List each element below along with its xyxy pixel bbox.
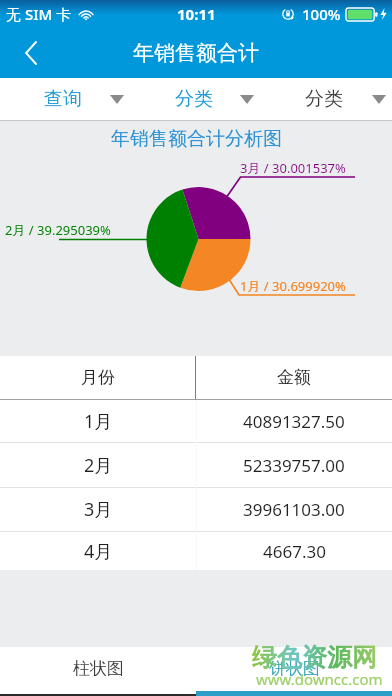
button[interactable]: 分类 — [130, 78, 261, 120]
staticText: 2月 — [84, 453, 113, 478]
staticText: 无 SIM 卡 — [6, 4, 72, 24]
button[interactable]: 查询 — [0, 78, 130, 120]
staticText: 3月 — [84, 497, 113, 522]
staticText: 52339757.00 — [243, 454, 345, 477]
staticText: 1月 — [84, 409, 113, 434]
button[interactable]: 柱状图 — [0, 647, 196, 689]
staticText: 年销售额合计分析图 — [111, 127, 282, 151]
staticText: 40891327.50 — [243, 410, 345, 433]
staticText: 柱状图 — [73, 658, 124, 679]
button[interactable]: 3月 — [0, 488, 392, 531]
button[interactable]: 分类 — [261, 78, 392, 120]
staticText: 月份 — [81, 367, 115, 388]
staticText: www.downcc.com — [256, 669, 383, 689]
button[interactable]: 返回 — [0, 28, 62, 78]
staticText: 绿色资源网 — [252, 642, 377, 673]
staticText: 2月 / 39.295039% — [5, 221, 111, 239]
staticText: 39961103.00 — [243, 498, 345, 521]
button[interactable]: 1月 — [0, 400, 392, 442]
button[interactable]: 饼状图 — [196, 647, 392, 689]
button[interactable]: 4月 — [0, 532, 392, 570]
staticText: 100% — [302, 4, 341, 24]
staticText: 1月 / 30.699920% — [240, 277, 346, 295]
staticText: 查询 — [44, 87, 82, 111]
staticText: 10:11 — [177, 4, 216, 24]
staticText: 3月 / 30.001537% — [240, 159, 346, 177]
staticText: 年销售额合计 — [133, 40, 259, 66]
button[interactable]: 2月 — [0, 443, 392, 487]
staticText: 分类 — [175, 87, 213, 111]
staticText: 分类 — [305, 87, 343, 111]
staticText: 4月 — [84, 539, 113, 564]
staticText: 饼状图 — [269, 658, 320, 679]
staticText: 4667.30 — [263, 540, 326, 563]
staticText: 金额 — [277, 367, 311, 388]
